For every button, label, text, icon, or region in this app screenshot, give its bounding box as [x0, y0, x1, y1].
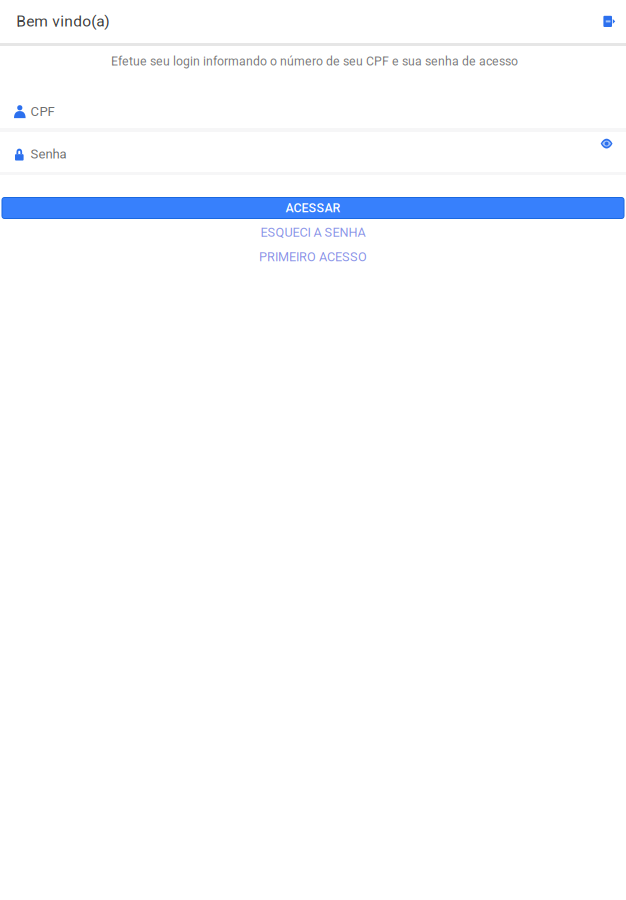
staticText: ESQUECI A SENHA — [260, 225, 365, 240]
button[interactable]: PRIMEIRO ACESSO — [0, 245, 626, 268]
staticText: PRIMEIRO ACESSO — [259, 250, 367, 264]
staticText: Senha — [31, 146, 67, 162]
staticText: Bem vindo(a) — [16, 12, 109, 30]
staticText: Efetue seu login informando o número de … — [111, 54, 518, 68]
button[interactable]: ACESSAR — [2, 197, 624, 218]
button[interactable]: Mostrar senha — [592, 129, 622, 159]
button[interactable]: ESQUECI A SENHA — [0, 221, 626, 244]
button[interactable]: CPF — [0, 91, 626, 133]
button[interactable]: Senha — [0, 133, 626, 175]
staticText: ACESSAR — [285, 201, 340, 215]
staticText: CPF — [31, 104, 55, 119]
button[interactable]: Sair — [591, 3, 626, 39]
